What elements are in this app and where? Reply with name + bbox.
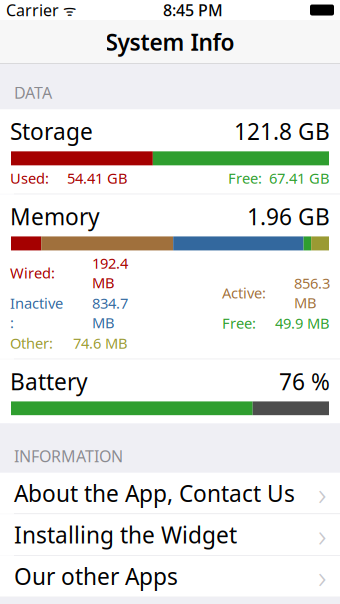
staticText: › — [318, 472, 326, 514]
staticText: 121.8 GB — [234, 116, 330, 146]
staticText: Other: — [10, 333, 53, 353]
staticText: Free: — [222, 313, 256, 333]
staticText: 76 % — [279, 366, 330, 396]
staticText: 8:45 PM — [163, 0, 223, 21]
button[interactable]: About the App, Contact Us — [0, 473, 340, 514]
staticText: 856.3 MB — [294, 273, 330, 312]
staticText: INFORMATION — [14, 445, 123, 467]
staticText: Our other Apps — [14, 561, 178, 591]
staticText: Inactive: — [10, 293, 63, 332]
staticText: 1.96 GB — [247, 201, 330, 231]
staticText: Wired: — [10, 263, 55, 283]
staticText: 54.41 GB — [67, 168, 128, 188]
staticText: Battery — [10, 366, 88, 396]
button[interactable]: Our other Apps — [0, 556, 340, 597]
staticText: › — [318, 555, 326, 597]
staticText: DATA — [14, 82, 52, 103]
staticText: Active: — [222, 283, 266, 303]
button[interactable]: Installing the Widget — [0, 514, 340, 555]
staticText: 192.4 MB — [92, 253, 128, 292]
staticText: Installing the Widget — [14, 520, 237, 550]
staticText: 834.7 MB — [92, 293, 128, 332]
staticText: Memory — [10, 201, 100, 231]
staticText: ᯤ — [59, 0, 76, 20]
staticText: 49.9 MB — [275, 313, 330, 333]
staticText: Used: — [10, 168, 49, 188]
staticText: About the App, Contact Us — [14, 478, 295, 508]
staticText: System Info — [105, 27, 234, 57]
staticText: Free: — [228, 168, 262, 188]
staticText: Storage — [10, 116, 93, 146]
staticText: Carrier — [6, 0, 59, 21]
staticText: 74.6 MB — [73, 333, 128, 353]
staticText: › — [318, 513, 326, 556]
staticText: 67.41 GB — [269, 168, 330, 188]
